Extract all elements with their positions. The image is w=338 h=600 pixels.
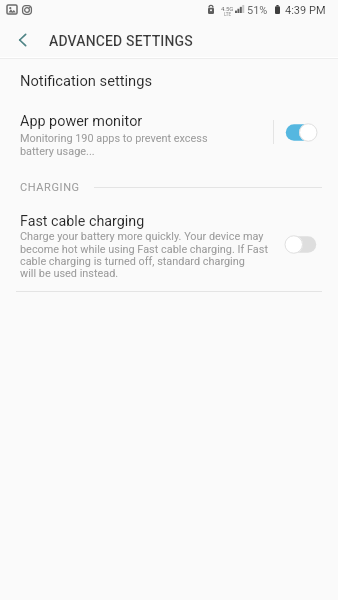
staticText: Notification settings bbox=[20, 72, 153, 89]
staticText: ADVANCED SETTINGS bbox=[49, 33, 193, 49]
button[interactable]: App power monitor bbox=[0, 104, 338, 160]
staticText: Monitoring 190 apps to prevent excess ba… bbox=[20, 132, 208, 157]
staticText: Charge your battery more quickly. Your d… bbox=[20, 230, 268, 279]
staticText: Fast cable charging bbox=[20, 213, 145, 230]
button[interactable]: App power monitor toggle bbox=[280, 115, 322, 149]
staticText: 4:39 PM bbox=[285, 4, 326, 17]
staticText: 51% bbox=[247, 4, 268, 17]
button[interactable]: Back bbox=[4, 22, 40, 57]
button[interactable]: Fast cable charging toggle bbox=[280, 227, 322, 261]
button[interactable]: Notification settings bbox=[0, 62, 338, 94]
staticText: LTE bbox=[224, 12, 232, 17]
button[interactable]: Fast cable charging bbox=[0, 204, 338, 288]
staticText: App power monitor bbox=[20, 113, 143, 130]
staticText: CHARGING bbox=[20, 181, 80, 194]
staticText: 4.5G bbox=[221, 5, 234, 12]
